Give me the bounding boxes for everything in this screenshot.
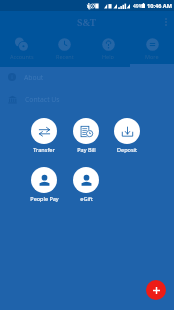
staticText: Deposit bbox=[117, 146, 137, 153]
staticText: 49% bbox=[133, 3, 143, 10]
staticText: About bbox=[24, 73, 44, 82]
staticText: Help bbox=[102, 53, 114, 59]
staticText: Recent bbox=[56, 53, 74, 59]
staticText: People Pay bbox=[30, 195, 59, 202]
button[interactable]: Recent bbox=[43, 33, 86, 59]
button[interactable]: Transfer bbox=[23, 118, 65, 153]
button[interactable]: About bbox=[0, 66, 130, 88]
button[interactable]: eGift bbox=[65, 167, 107, 202]
button[interactable]: More bbox=[130, 33, 174, 59]
staticText: Accounts bbox=[10, 53, 34, 59]
button[interactable]: More options bbox=[165, 18, 167, 26]
staticText: Contact Us bbox=[25, 95, 60, 104]
staticText: Pay Bill bbox=[77, 146, 96, 153]
button[interactable]: People Pay bbox=[23, 167, 65, 202]
staticText: More bbox=[145, 53, 159, 59]
button[interactable]: Pay Bill bbox=[65, 118, 107, 153]
button[interactable]: Help bbox=[86, 33, 130, 59]
staticText: Transfer bbox=[33, 146, 55, 153]
staticText: S&T bbox=[77, 16, 97, 29]
staticText: eGift bbox=[80, 195, 93, 202]
staticText: 10:46 AM bbox=[147, 2, 172, 10]
button[interactable]: Deposit bbox=[106, 118, 148, 153]
button[interactable]: Close actions menu bbox=[146, 280, 166, 300]
button[interactable]: Accounts bbox=[0, 33, 43, 59]
